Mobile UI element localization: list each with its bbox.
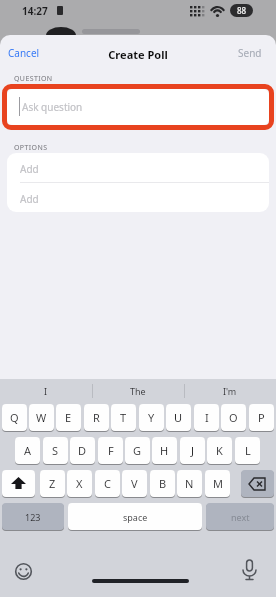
staticText: X: [76, 476, 83, 491]
button[interactable]: X: [67, 470, 92, 497]
staticText: F: [108, 443, 114, 458]
staticText: V: [131, 476, 138, 491]
button[interactable]: A: [15, 437, 40, 464]
staticText: The: [130, 385, 146, 397]
button[interactable]: O: [221, 404, 246, 431]
button[interactable]: Cancel: [8, 46, 40, 60]
staticText: G: [133, 443, 142, 458]
button[interactable]: Ask question: [7, 89, 269, 125]
button[interactable]: Y: [139, 404, 164, 431]
staticText: 88: [237, 5, 247, 16]
staticText: I: [44, 385, 48, 397]
button[interactable]: [238, 558, 260, 583]
button[interactable]: space: [68, 503, 202, 530]
button[interactable]: I: [194, 404, 219, 431]
button[interactable]: Z: [40, 470, 65, 497]
staticText: A: [24, 443, 32, 458]
button[interactable]: The: [92, 379, 184, 403]
button[interactable]: V: [122, 470, 147, 497]
staticText: Ask question: [22, 100, 83, 114]
button[interactable]: next: [206, 503, 274, 530]
staticText: J: [191, 443, 195, 458]
staticText: B: [159, 476, 167, 491]
button[interactable]: D: [70, 437, 95, 464]
staticText: W: [36, 410, 47, 425]
staticText: space: [123, 511, 148, 523]
staticText: Send: [238, 46, 262, 60]
button[interactable]: Q: [2, 404, 27, 431]
staticText: D: [78, 443, 87, 458]
button[interactable]: C: [95, 470, 120, 497]
button[interactable]: K: [207, 437, 232, 464]
staticText: OPTIONS: [14, 143, 48, 153]
staticText: Cancel: [8, 46, 40, 60]
button[interactable]: N: [177, 470, 202, 497]
button[interactable]: W: [29, 404, 54, 431]
button[interactable]: L: [235, 437, 260, 464]
button[interactable]: I'm: [184, 379, 276, 403]
button[interactable]: G: [125, 437, 150, 464]
staticText: S: [52, 443, 59, 458]
staticText: Q: [10, 410, 19, 425]
staticText: H: [160, 443, 169, 458]
staticText: P: [258, 410, 265, 425]
staticText: E: [65, 410, 72, 425]
button[interactable]: [2, 470, 35, 497]
button[interactable]: B: [150, 470, 175, 497]
button[interactable]: Add: [7, 183, 269, 212]
button[interactable]: Send: [238, 46, 262, 60]
button[interactable]: H: [152, 437, 177, 464]
staticText: Add: [20, 192, 39, 206]
button[interactable]: U: [166, 404, 191, 431]
staticText: R: [93, 410, 100, 425]
staticText: Z: [49, 476, 56, 491]
staticText: L: [245, 443, 251, 458]
button[interactable]: F: [98, 437, 123, 464]
staticText: U: [174, 410, 183, 425]
button[interactable]: Add: [7, 153, 269, 182]
button[interactable]: P: [249, 404, 274, 431]
button[interactable]: I: [0, 379, 92, 403]
staticText: C: [104, 476, 111, 491]
staticText: Y: [148, 410, 155, 425]
staticText: Add: [20, 162, 39, 176]
button[interactable]: [241, 470, 274, 497]
staticText: T: [120, 410, 127, 425]
staticText: K: [216, 443, 223, 458]
staticText: 14:27: [22, 4, 48, 18]
staticText: 123: [25, 511, 41, 523]
button[interactable]: S: [43, 437, 68, 464]
button[interactable]: E: [56, 404, 81, 431]
staticText: QUESTION: [14, 74, 53, 84]
button[interactable]: R: [84, 404, 109, 431]
button[interactable]: [12, 560, 34, 582]
button[interactable]: M: [205, 470, 230, 497]
staticText: M: [213, 476, 223, 491]
button[interactable]: 123: [2, 503, 64, 530]
staticText: I: [205, 410, 209, 425]
staticText: next: [231, 511, 250, 523]
button[interactable]: T: [111, 404, 136, 431]
staticText: I'm: [223, 385, 237, 397]
button[interactable]: J: [180, 437, 205, 464]
staticText: Create Poll: [0, 47, 276, 62]
staticText: N: [185, 476, 194, 491]
staticText: O: [229, 410, 238, 425]
